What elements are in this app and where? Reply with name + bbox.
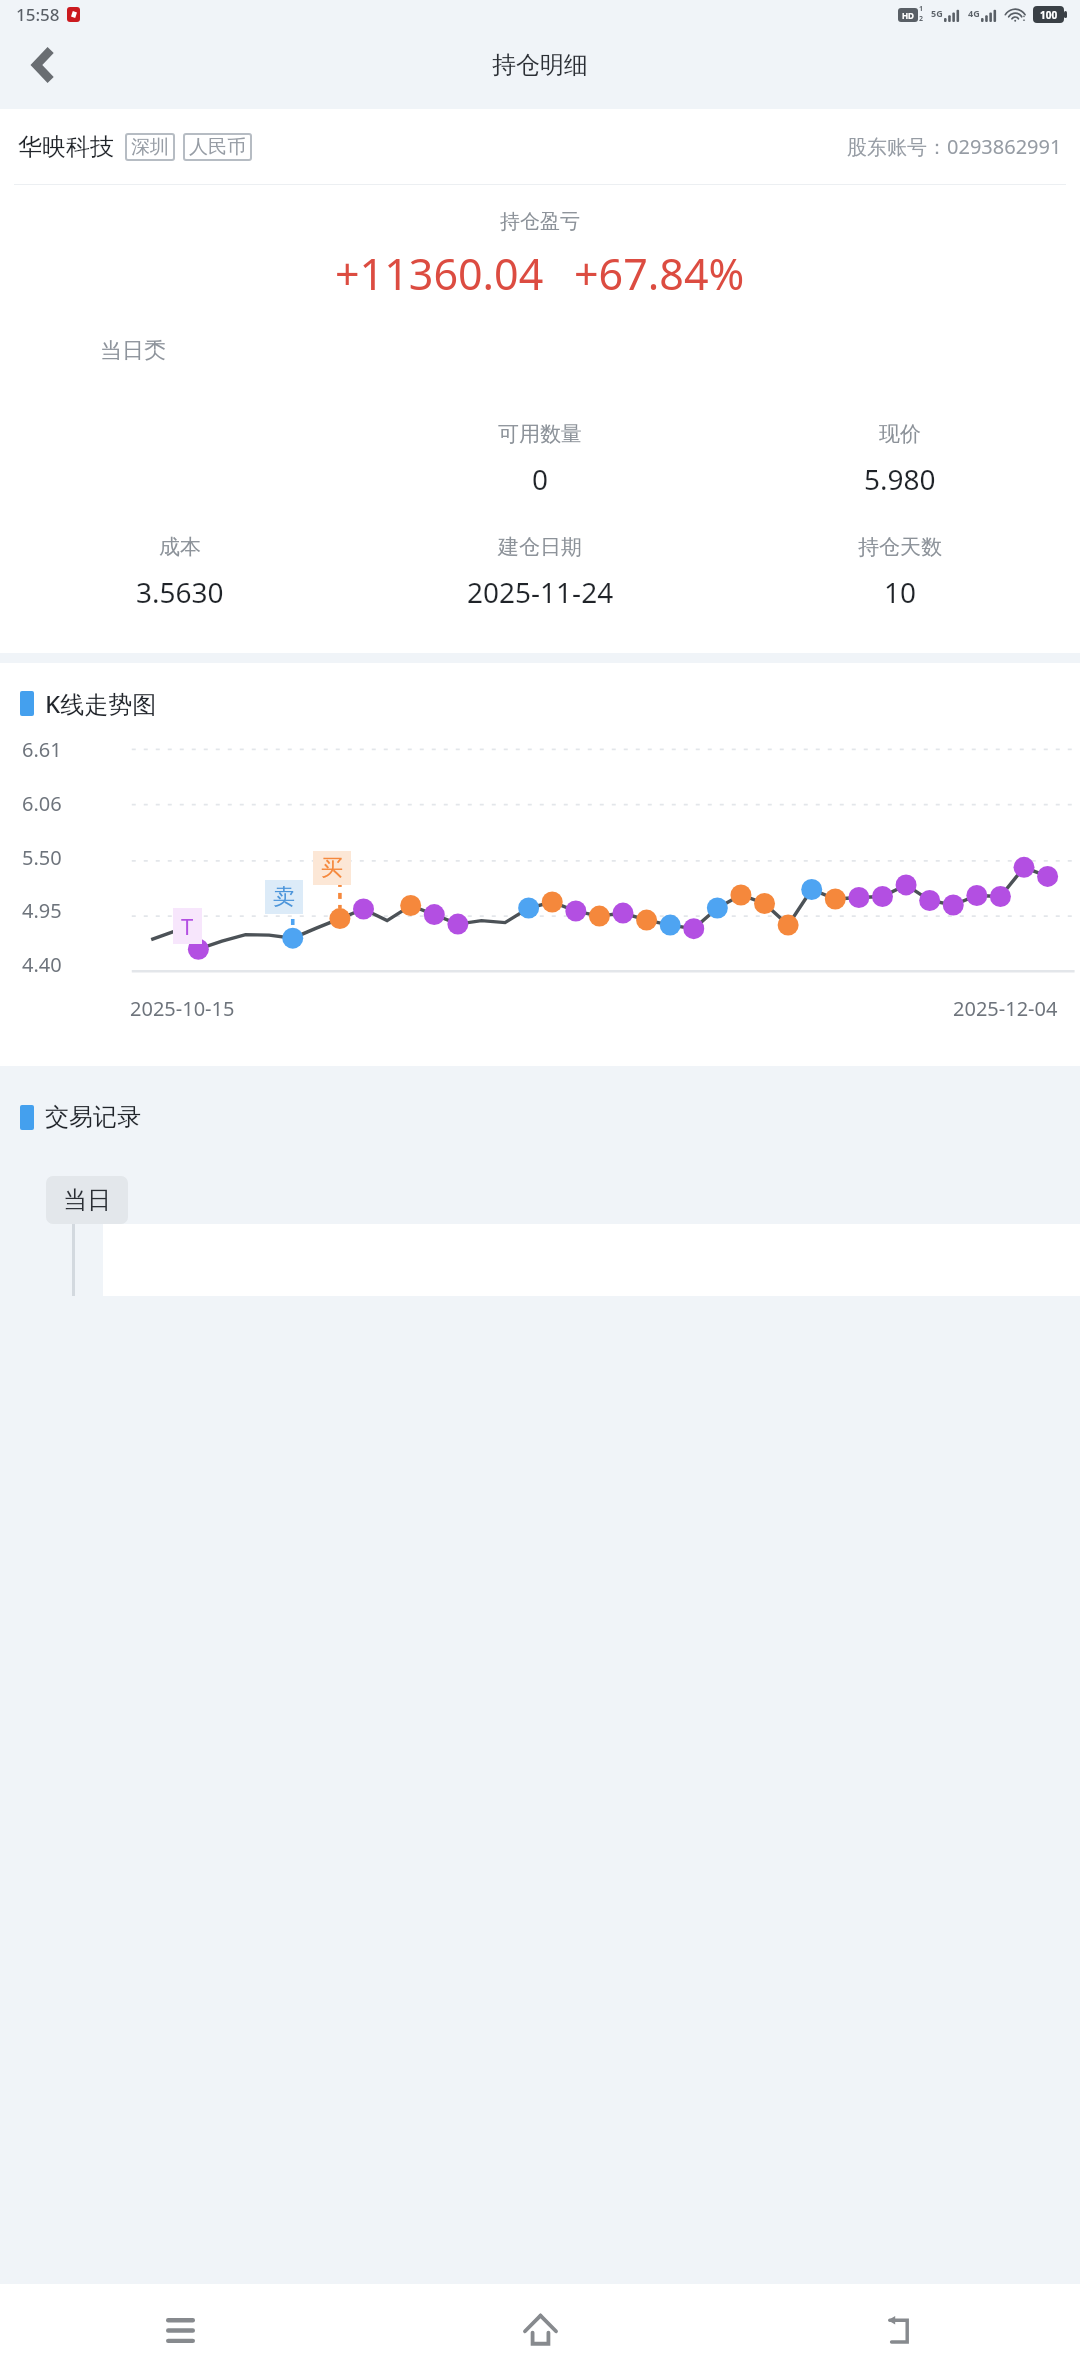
staticText: 100 bbox=[1040, 8, 1058, 22]
staticText: HD bbox=[902, 10, 914, 21]
staticText: 6.61 bbox=[22, 736, 62, 763]
button[interactable]: K线走势图 bbox=[20, 687, 157, 720]
staticText: 成本 bbox=[159, 534, 201, 560]
staticText: 现价 bbox=[879, 421, 921, 447]
staticText: 4G bbox=[968, 7, 980, 19]
staticText: 2025-10-15 bbox=[130, 995, 235, 1022]
staticText: 持仓明细 bbox=[492, 50, 588, 80]
staticText: 当日 bbox=[63, 1185, 111, 1215]
staticText: 卖 bbox=[273, 883, 295, 911]
staticText: 1 bbox=[919, 4, 924, 14]
staticText: +67.84% bbox=[574, 244, 745, 303]
staticText: 持仓盈亏 bbox=[0, 209, 1080, 234]
staticText: 2025-11-24 bbox=[467, 573, 614, 611]
staticText: 5.50 bbox=[22, 844, 62, 871]
button[interactable]: 交易记录 bbox=[20, 1102, 141, 1132]
staticText: K线走势图 bbox=[45, 687, 157, 720]
button[interactable]: Back bbox=[14, 36, 72, 94]
staticText: 人民币 bbox=[189, 135, 246, 159]
button[interactable]: Back bbox=[867, 2297, 933, 2363]
staticText: 0 bbox=[532, 460, 549, 498]
staticText: 15:58 bbox=[16, 3, 60, 26]
staticText: +11360.04 bbox=[335, 244, 544, 303]
staticText: 股东账号：0293862991 bbox=[847, 133, 1062, 160]
button[interactable]: 当日 bbox=[46, 1176, 128, 1224]
staticText: 买 bbox=[321, 854, 343, 882]
staticText: 华映科技 bbox=[18, 132, 114, 162]
staticText: 建仓日期 bbox=[498, 534, 582, 560]
staticText: 持仓天数 bbox=[858, 534, 942, 560]
staticText: 可用数量 bbox=[498, 421, 582, 447]
staticText: 4.95 bbox=[22, 897, 62, 924]
staticText: 2 bbox=[919, 14, 924, 24]
staticText: 深圳 bbox=[131, 135, 169, 159]
button[interactable]: 华映科技 bbox=[0, 109, 1080, 184]
staticText: 交易记录 bbox=[45, 1102, 141, 1132]
staticText: 10 bbox=[884, 573, 917, 611]
staticText: 3.5630 bbox=[136, 573, 224, 611]
button[interactable]: Home bbox=[507, 2297, 573, 2363]
staticText: 2025-12-04 bbox=[953, 995, 1058, 1022]
staticText: 当日秂 bbox=[100, 337, 166, 365]
staticText: 5G bbox=[931, 7, 943, 19]
staticText: 4.40 bbox=[22, 951, 62, 978]
staticText: 6.06 bbox=[22, 790, 62, 817]
staticText: T bbox=[181, 911, 194, 941]
staticText: 5.980 bbox=[864, 460, 936, 498]
button[interactable]: Recents bbox=[147, 2297, 213, 2363]
